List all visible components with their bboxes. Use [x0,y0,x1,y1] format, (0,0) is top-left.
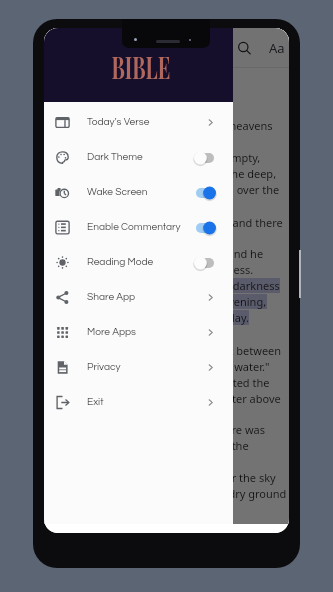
staticText: Aa [269,39,285,57]
staticText: darkness was over the surface of the dee… [55,166,277,181]
staticText: and the Spirit of God was hovering over … [55,182,280,197]
staticText: water under the vault from the water abo… [55,391,281,406]
staticText: and there was morning - the first day. [55,310,249,325]
staticText: God called the vault "sky." And there wa… [55,422,265,437]
button[interactable]: Dark Theme [44,140,233,175]
staticText: Now the earth was formless and empty, [55,150,261,165]
staticText: God saw that the light was good, and he [55,246,264,261]
staticText: Wake Screen [87,187,148,198]
staticText: evening, and there was morning - the [55,438,249,453]
button[interactable]: Search [231,35,257,61]
button[interactable]: Today's Verse [44,105,233,140]
button[interactable]: Wake Screen [44,175,233,210]
staticText: Share App [87,292,136,303]
button[interactable]: Enable Commentary [44,210,233,245]
staticText: In the beginning God created the heavens [55,118,273,133]
staticText: Privacy [87,362,121,373]
staticText: BIBLE [112,45,170,86]
button[interactable]: Share App [44,280,233,315]
staticText: he called "night." And there was evening… [55,294,267,309]
staticText: And God said, "Let the water under the s… [55,470,276,485]
staticText: And God said, "Let there be light," and … [55,215,283,230]
staticText: And God said, "Let there be a vault betw… [55,343,282,358]
staticText: separated the light from the darkness. [55,262,254,277]
button[interactable]: Reading Mode [44,245,233,280]
staticText: God called the light "day," and the dark… [55,278,280,293]
button[interactable]: Privacy [44,350,233,385]
button[interactable]: Text size [264,35,289,61]
staticText: Today's Verse [87,117,150,128]
staticText: More Apps [87,327,136,338]
staticText: Enable Commentary [87,222,181,233]
button[interactable]: More Apps [44,315,233,350]
staticText: be gathered to one place, and let dry gr… [55,486,287,501]
staticText: the waters to separate water from water.… [55,359,270,374]
staticText: was light. [55,231,105,246]
staticText: it. And it was so. [55,407,139,422]
staticText: So God made the vault and separated the [55,375,270,390]
staticText: Exit [87,397,104,408]
staticText: Dark Theme [87,152,143,163]
button[interactable]: Exit [44,385,233,420]
staticText: Reading Mode [87,257,154,268]
